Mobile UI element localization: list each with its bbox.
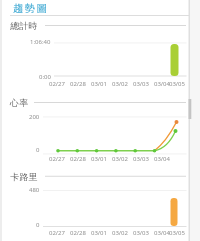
staticText: 03/03: [133, 80, 149, 88]
staticText: 趨勢圖: [13, 2, 49, 15]
button[interactable]: 趨勢圖: [13, 2, 49, 15]
staticText: 03/04: [154, 155, 170, 163]
staticText: 03/05: [169, 229, 185, 237]
staticText: 480: [29, 186, 40, 194]
staticText: 03/04: [154, 229, 170, 237]
staticText: 1:06:40: [30, 38, 51, 46]
staticText: 03/04: [154, 80, 170, 88]
staticText: 心率: [10, 97, 29, 108]
staticText: 03/03: [133, 229, 149, 237]
staticText: 0: [36, 221, 40, 229]
staticText: 02/28: [70, 155, 86, 163]
staticText: 03/01: [91, 80, 107, 88]
staticText: 03/05: [169, 80, 185, 88]
staticText: 02/27: [49, 155, 65, 163]
staticText: 卡路里: [10, 171, 38, 182]
staticText: 03/02: [112, 80, 128, 88]
staticText: 0: [36, 146, 40, 154]
staticText: 03/01: [91, 229, 107, 237]
staticText: 02/28: [70, 80, 86, 88]
staticText: 02/28: [70, 229, 86, 237]
staticText: 03/01: [91, 155, 107, 163]
staticText: 總計時: [10, 20, 38, 31]
staticText: 03/02: [112, 229, 128, 237]
staticText: 03/02: [112, 155, 128, 163]
staticText: 0:00: [39, 73, 51, 81]
staticText: 200: [29, 113, 40, 121]
staticText: 02/27: [49, 229, 65, 237]
staticText: 02/27: [49, 80, 65, 88]
staticText: 03/03: [133, 155, 149, 163]
